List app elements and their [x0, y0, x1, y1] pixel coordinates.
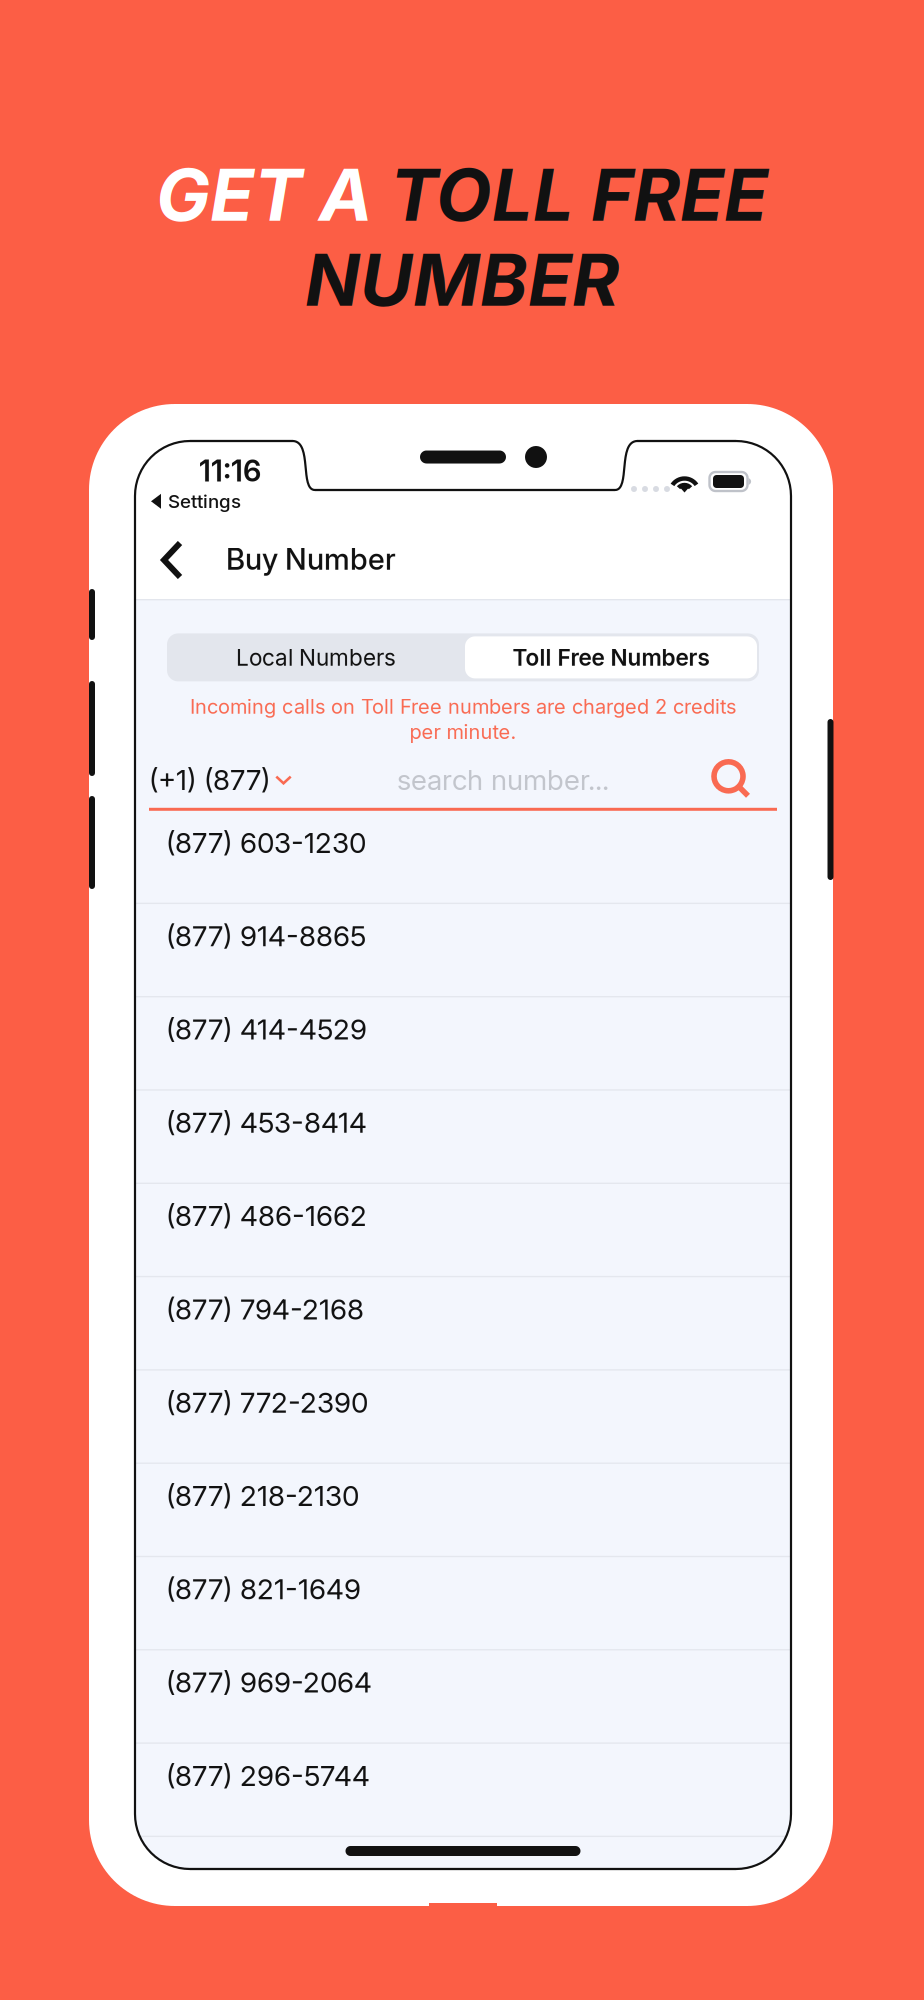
staticText: NUMBER: [305, 236, 619, 323]
button[interactable]: (877) 296-5744: [135, 1744, 791, 1837]
button[interactable]: (877) 414-4529: [135, 997, 791, 1091]
button[interactable]: (877) 821-1649: [135, 1557, 791, 1650]
staticText: (877) 414-4529: [166, 1012, 367, 1046]
button[interactable]: (877) 772-2390: [135, 1371, 791, 1464]
button[interactable]: (877) 603-1230: [135, 811, 791, 904]
staticText: (877) 794-2168: [166, 1292, 364, 1326]
staticText: (877) 453-8414: [166, 1106, 367, 1140]
staticText: TOLL FREE: [390, 151, 768, 238]
button[interactable]: (877) 486-1662: [135, 1184, 791, 1277]
staticText: search number...: [397, 763, 609, 797]
staticText: Incoming calls on Toll Free numbers are …: [190, 694, 736, 719]
staticText: per minute.: [409, 720, 516, 744]
button[interactable]: (877) 969-2064: [135, 1650, 791, 1744]
staticText: GET A: [156, 151, 390, 238]
button[interactable]: (877) 794-2168: [135, 1277, 791, 1371]
staticText: Local Numbers: [236, 644, 396, 671]
staticText: (877) 914-8865: [166, 919, 366, 953]
button[interactable]: Search: [714, 760, 751, 800]
staticText: Settings: [168, 490, 241, 513]
button[interactable]: Local Numbers: [167, 633, 465, 681]
button[interactable]: (877) 218-2130: [135, 1464, 791, 1557]
button[interactable]: (+1) (877): [149, 763, 292, 797]
staticText: (877) 821-1649: [166, 1572, 361, 1606]
staticText: (877) 218-2130: [166, 1479, 359, 1513]
button[interactable]: Back: [151, 527, 204, 591]
staticText: (877) 486-1662: [166, 1199, 367, 1233]
button[interactable]: (877) 914-8865: [135, 904, 791, 997]
staticText: (877) 772-2390: [166, 1386, 368, 1419]
staticText: (877) 296-5744: [166, 1759, 370, 1793]
staticText: 11:16: [199, 453, 261, 488]
button[interactable]: (877) 453-8414: [135, 1091, 791, 1184]
staticText: (877) 603-1230: [166, 826, 366, 860]
button[interactable]: Toll Free Numbers: [465, 636, 757, 678]
staticText: Toll Free Numbers: [512, 644, 709, 671]
staticText: (+1) (877): [149, 763, 270, 797]
staticText: Buy Number: [226, 541, 396, 577]
staticText: (877) 969-2064: [166, 1665, 372, 1699]
